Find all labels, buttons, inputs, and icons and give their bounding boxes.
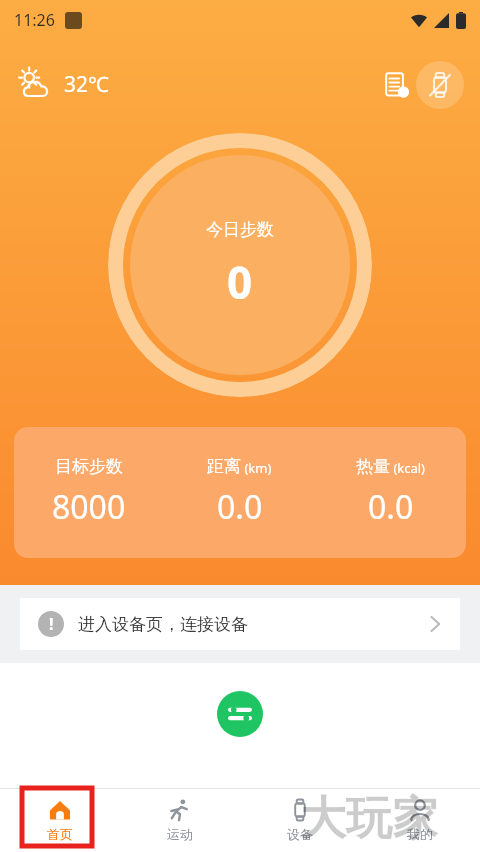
- button[interactable]: !: [20, 598, 460, 650]
- staticText: (kcal): [390, 459, 426, 477]
- staticText: 运动: [167, 826, 193, 842]
- button[interactable]: 32℃: [12, 62, 113, 106]
- staticText: 0.0: [368, 485, 414, 529]
- staticText: 0: [227, 252, 253, 312]
- staticText: !: [49, 613, 54, 635]
- button[interactable]: Device disconnected: [416, 61, 464, 109]
- staticText: 进入设备页，连接设备: [78, 614, 248, 635]
- staticText: 距离: [207, 456, 241, 477]
- staticText: 首页: [47, 826, 73, 842]
- staticText: 大玩家: [300, 790, 438, 848]
- button[interactable]: 运动: [120, 788, 240, 852]
- staticText: 0.0: [217, 485, 263, 529]
- button[interactable]: 首页: [0, 788, 120, 852]
- staticText: 热量: [356, 456, 390, 477]
- staticText: 目标步数: [55, 456, 123, 477]
- button[interactable]: Adjust settings: [217, 691, 263, 737]
- button[interactable]: 今日步数: [108, 133, 372, 397]
- button[interactable]: History: [373, 61, 421, 109]
- staticText: 11:26: [14, 9, 55, 31]
- button[interactable]: 设备: [240, 788, 360, 852]
- staticText: 我的: [407, 826, 433, 842]
- staticText: 32℃: [64, 70, 109, 99]
- staticText: 今日步数: [206, 219, 274, 240]
- staticText: 设备: [287, 826, 313, 842]
- staticText: 8000: [52, 485, 126, 529]
- staticText: (km): [241, 459, 272, 477]
- button[interactable]: 目标步数: [14, 427, 466, 558]
- button[interactable]: 我的: [360, 788, 480, 852]
